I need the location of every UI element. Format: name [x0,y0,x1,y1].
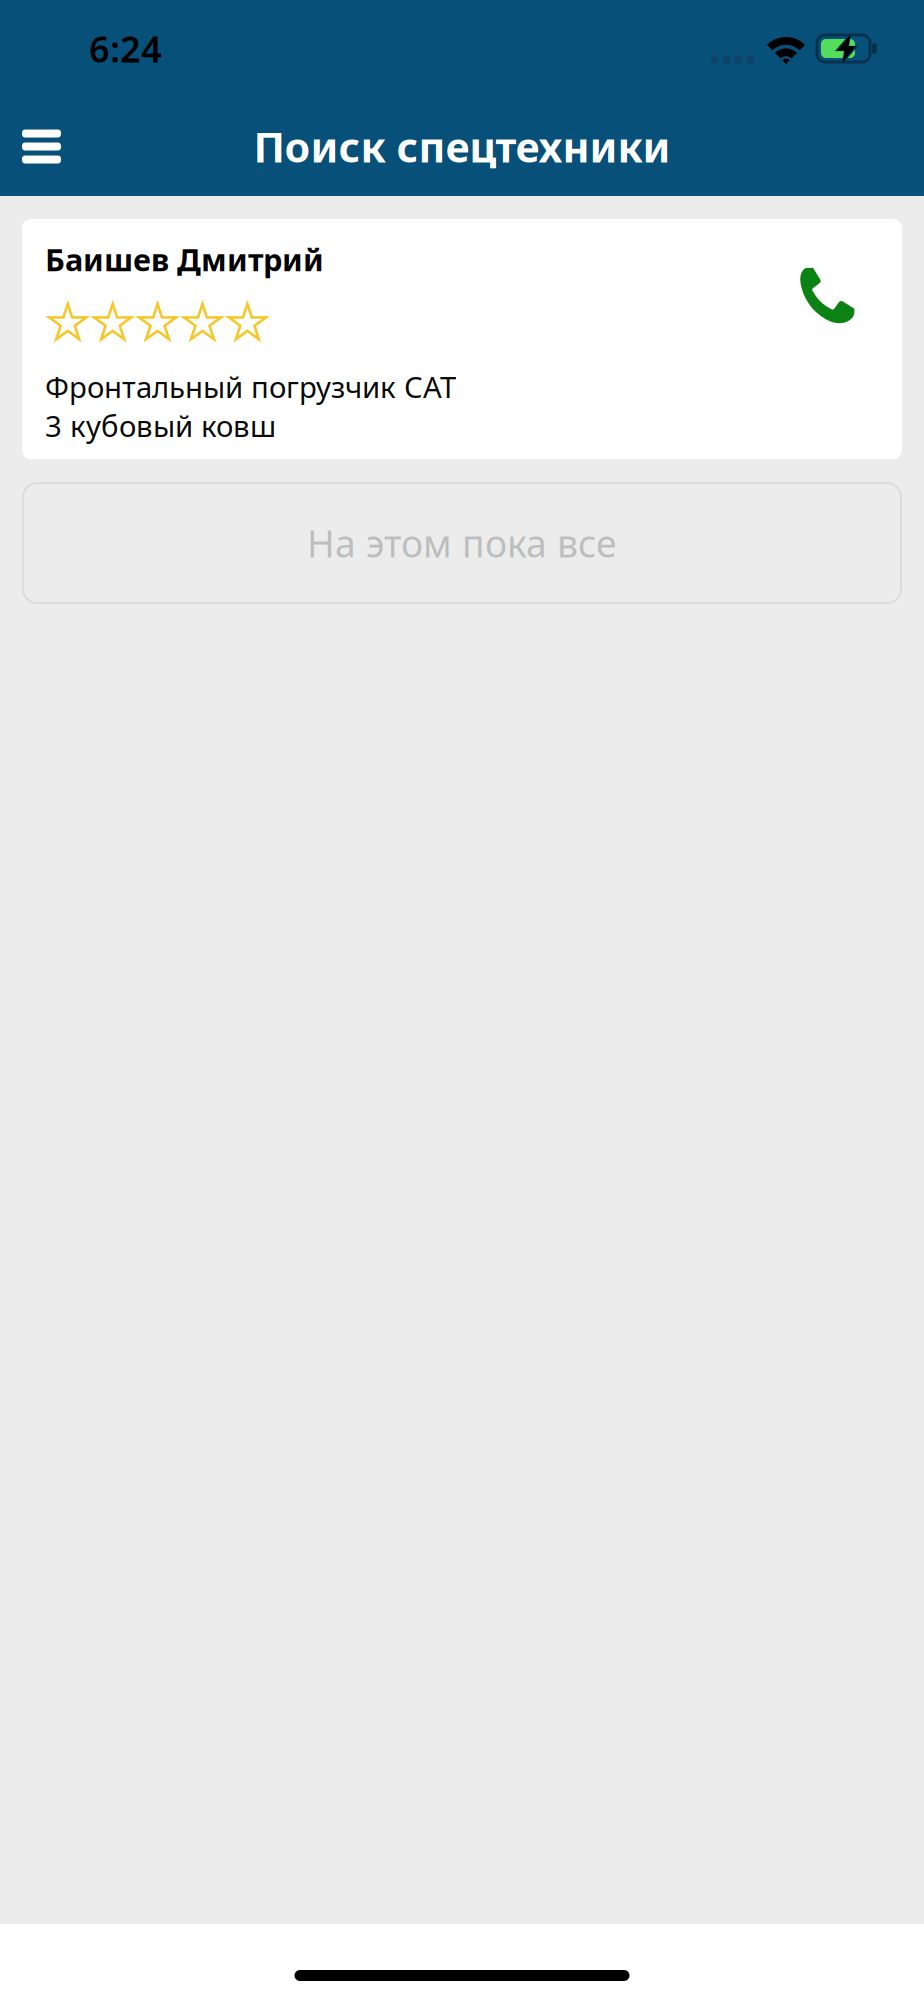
staticText: Поиск спецтехники [253,119,670,174]
staticText: 3 кубовый ковш [45,406,276,445]
staticText: Фронтальный погрузчик CAT [45,367,456,406]
button[interactable]: Menu [0,103,83,189]
staticText: Баишев Дмитрий [45,239,324,280]
button[interactable]: Call [795,219,902,327]
staticText: На этом пока все [307,518,617,568]
staticText: 6:24 [89,25,162,72]
